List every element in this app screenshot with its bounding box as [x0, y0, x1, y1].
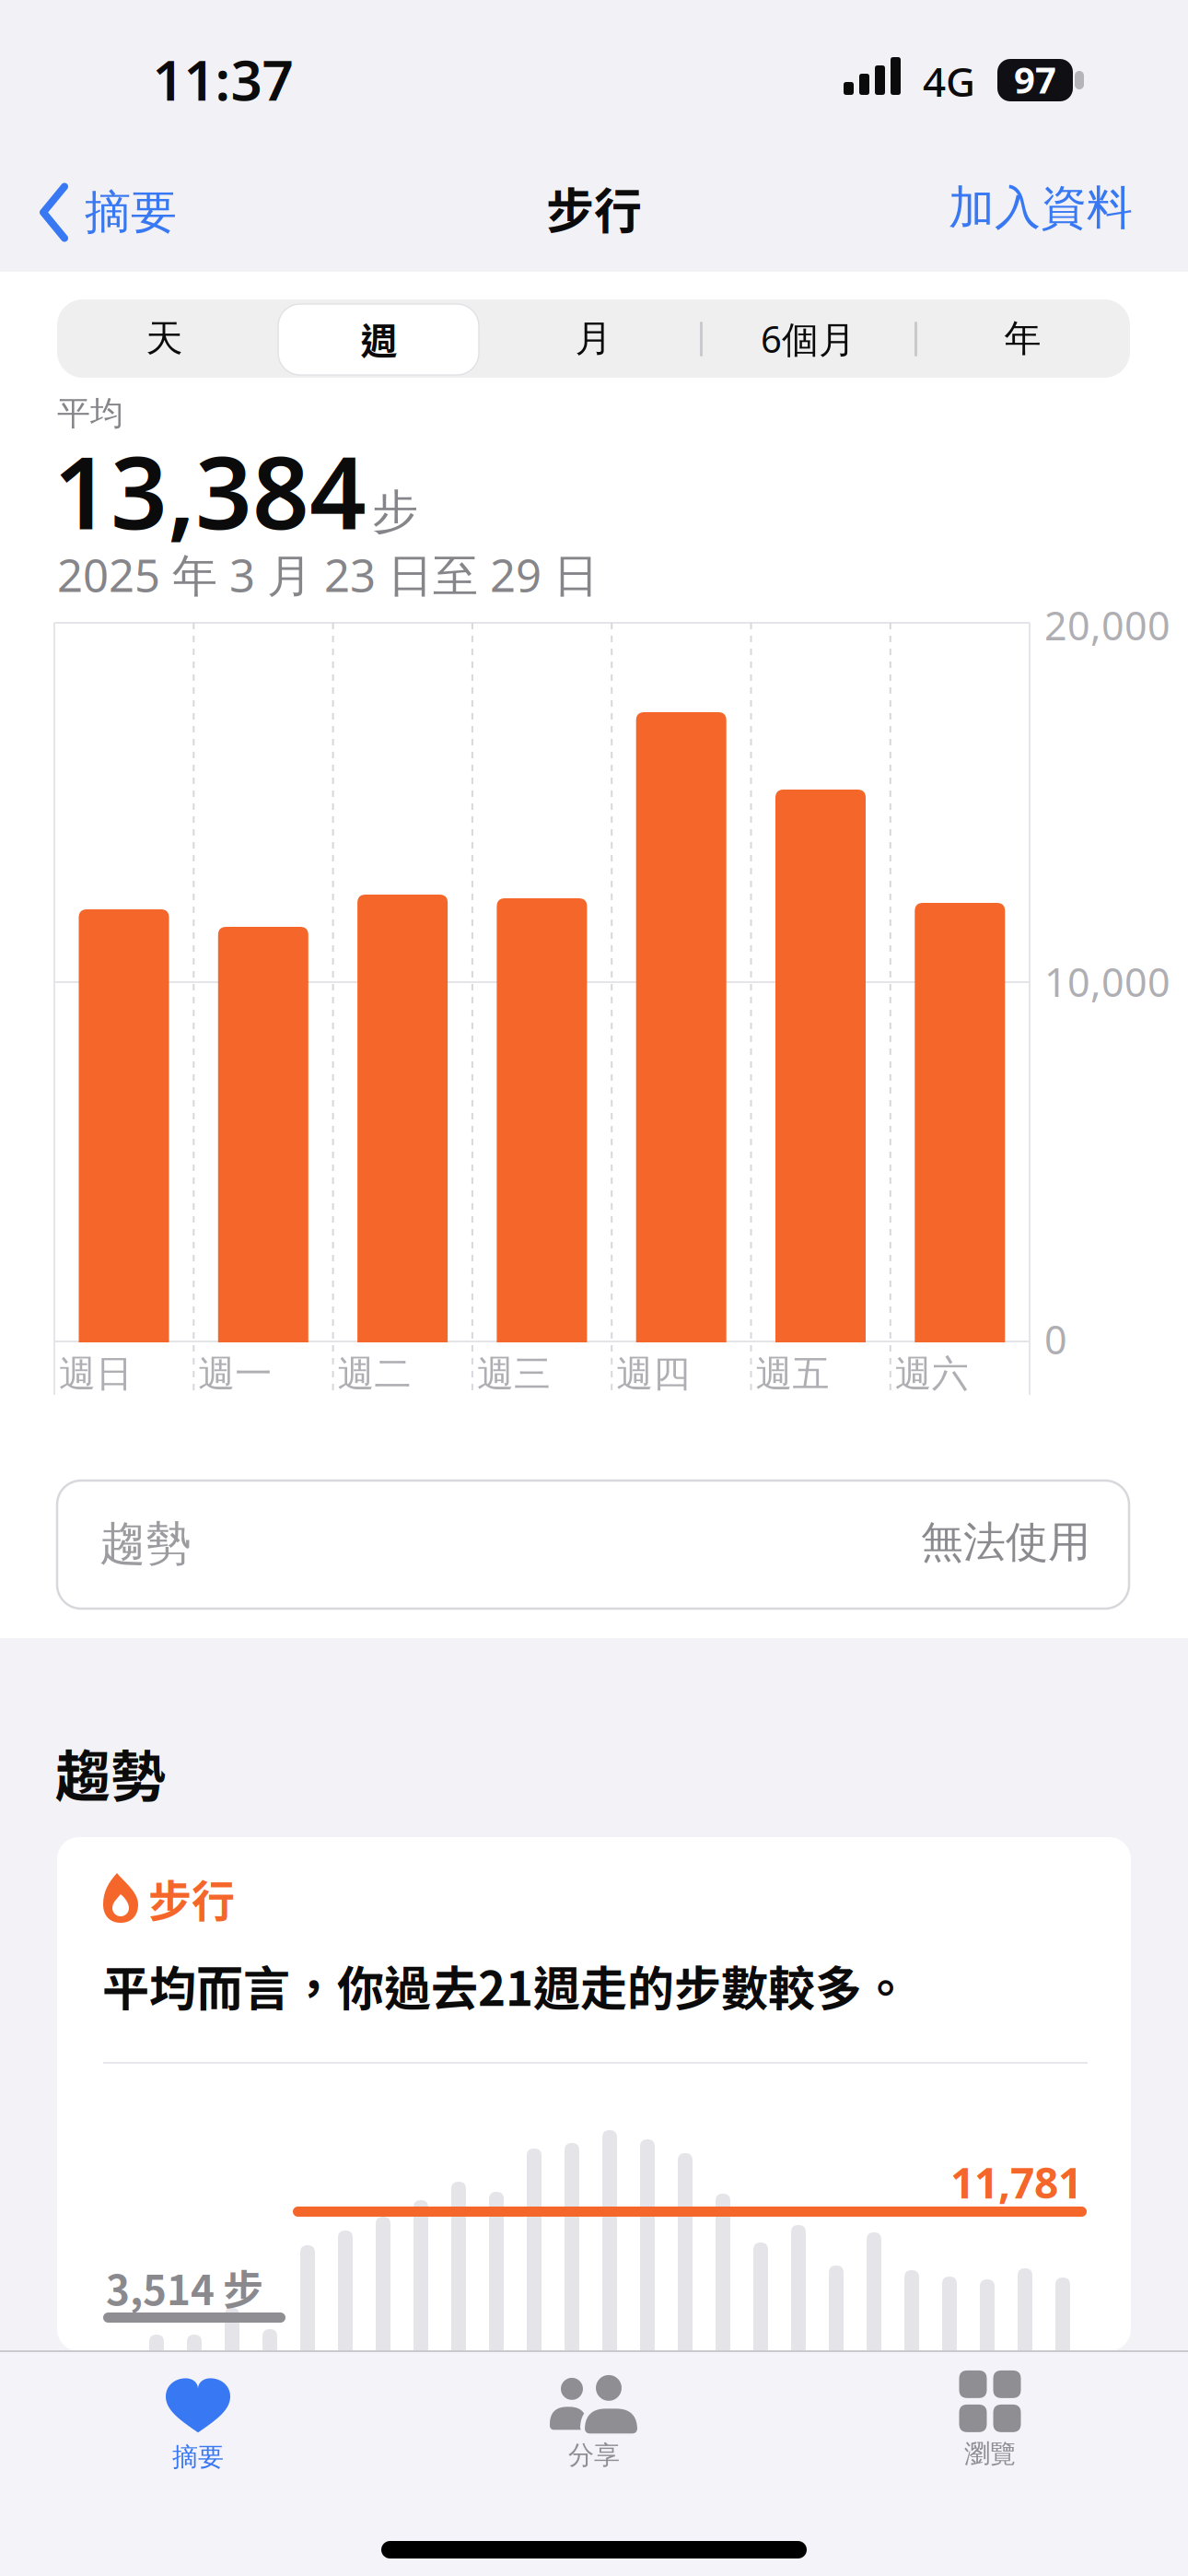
- staticText: 瀏覽: [964, 2438, 1016, 2470]
- staticText: 分享: [568, 2439, 620, 2472]
- button[interactable]: 年: [915, 299, 1130, 378]
- staticText: 週: [361, 312, 397, 365]
- staticText: 11,781: [950, 2153, 1082, 2211]
- staticText: 週三: [477, 1351, 551, 1397]
- staticText: 週一: [198, 1351, 272, 1397]
- button[interactable]: 摘要: [0, 2368, 396, 2484]
- button[interactable]: 加入資料: [856, 179, 1133, 237]
- staticText: 平均而言，你過去21週走的步數較多。: [102, 1951, 909, 2019]
- staticText: 摘要: [85, 183, 177, 241]
- staticText: 趨勢: [55, 1733, 166, 1813]
- staticText: 月: [575, 315, 612, 362]
- staticText: 平均: [57, 392, 123, 434]
- staticText: 97: [1014, 54, 1056, 104]
- staticText: 6個月: [761, 314, 856, 364]
- staticText: 2025 年 3 月 23 日至 29 日: [57, 544, 599, 605]
- staticText: 10,000: [1044, 954, 1171, 1008]
- button[interactable]: 6個月: [701, 299, 915, 378]
- button[interactable]: 瀏覽: [792, 2362, 1188, 2478]
- staticText: 無法使用: [921, 1516, 1090, 1569]
- button[interactable]: 週: [272, 299, 486, 378]
- staticText: 0: [1044, 1312, 1067, 1366]
- staticText: 13,384: [53, 423, 367, 558]
- staticText: 4G: [923, 53, 975, 109]
- button[interactable]: 分享: [396, 2364, 792, 2480]
- staticText: 週日: [59, 1351, 133, 1397]
- button[interactable]: 趨勢: [57, 1481, 1129, 1609]
- staticText: 週四: [616, 1351, 690, 1397]
- staticText: 3,514 步: [106, 2258, 263, 2317]
- staticText: 趨勢: [99, 1515, 192, 1573]
- button[interactable]: 天: [57, 299, 272, 378]
- staticText: 摘要: [172, 2441, 224, 2473]
- staticText: 週二: [338, 1351, 411, 1397]
- staticText: 步: [372, 483, 418, 541]
- staticText: 週五: [756, 1351, 829, 1397]
- staticText: 11:37: [152, 41, 293, 117]
- button[interactable]: 月: [486, 299, 701, 378]
- staticText: 20,000: [1044, 598, 1171, 652]
- staticText: 加入資料: [949, 179, 1133, 237]
- staticText: 步行: [148, 1867, 235, 1929]
- button[interactable]: 摘要: [41, 183, 177, 241]
- button[interactable]: [57, 1837, 1131, 2351]
- staticText: 步行: [546, 173, 642, 243]
- staticText: 週六: [895, 1351, 969, 1397]
- staticText: 年: [1004, 315, 1041, 362]
- staticText: 天: [146, 315, 183, 362]
